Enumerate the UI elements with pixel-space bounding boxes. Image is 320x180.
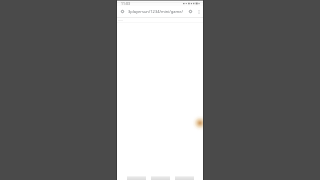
button[interactable]: 3playersun/1234/mini/game/gameg [128, 8, 186, 15]
button[interactable]: Recent apps [175, 176, 194, 180]
button[interactable]: Reload page [187, 8, 194, 15]
button[interactable]: Back [127, 176, 146, 180]
staticText: 3playersun/1234/mini/game/gameg [128, 9, 186, 14]
button[interactable]: Site information [119, 8, 126, 15]
button[interactable]: More options [196, 8, 202, 15]
staticText: 11:03 [121, 1, 130, 6]
button[interactable]: Home [151, 176, 170, 180]
